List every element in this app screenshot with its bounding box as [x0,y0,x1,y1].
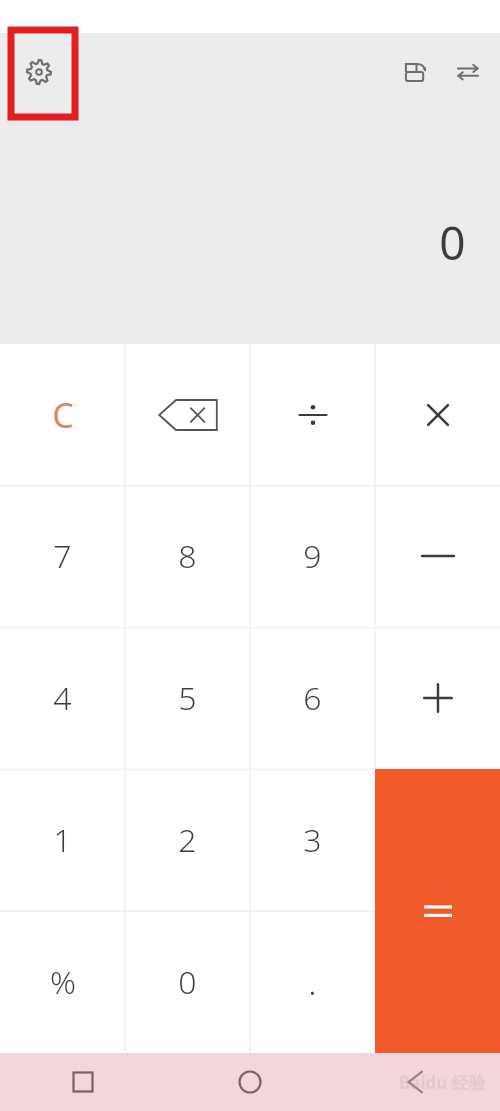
button[interactable]: Back [333,1053,500,1111]
button[interactable]: Settings [9,42,69,102]
button[interactable]: Equals [375,769,500,1053]
button[interactable]: Recent apps [0,1053,166,1111]
button[interactable]: 7 [0,485,125,627]
button[interactable]: % [0,911,125,1053]
staticText: 0 [178,960,197,1004]
button[interactable]: Convert units [444,48,492,96]
staticText: Baidu 经验 [399,1071,486,1094]
button[interactable]: 6 [250,627,375,769]
staticText: C [52,392,74,438]
button[interactable]: 0 [125,911,250,1053]
staticText: 4 [53,676,72,720]
staticText: 2 [178,818,197,862]
staticText: . [308,959,317,1005]
button[interactable]: 5 [125,627,250,769]
staticText: % [50,960,76,1004]
button[interactable]: . [250,911,375,1053]
button[interactable]: Divide [250,344,375,485]
staticText: 9 [303,534,322,578]
button[interactable]: 3 [250,769,375,911]
button[interactable]: Home [166,1053,333,1111]
staticText: 7 [53,534,72,578]
button[interactable]: 9 [250,485,375,627]
button[interactable]: 2 [125,769,250,911]
staticText: 8 [178,534,197,578]
button[interactable]: 4 [0,627,125,769]
button[interactable]: Rotate screen [392,48,440,96]
button[interactable]: Multiply [375,344,500,485]
button[interactable]: C [0,344,125,485]
staticText: 5 [178,676,197,720]
button[interactable]: 1 [0,769,125,911]
staticText: 6 [303,676,322,720]
button[interactable]: 8 [125,485,250,627]
button[interactable]: Minus [375,485,500,627]
staticText: 1 [53,818,72,862]
button[interactable]: Backspace [125,344,250,485]
staticText: 0 [439,211,466,274]
staticText: 3 [303,818,322,862]
button[interactable]: Plus [375,627,500,769]
